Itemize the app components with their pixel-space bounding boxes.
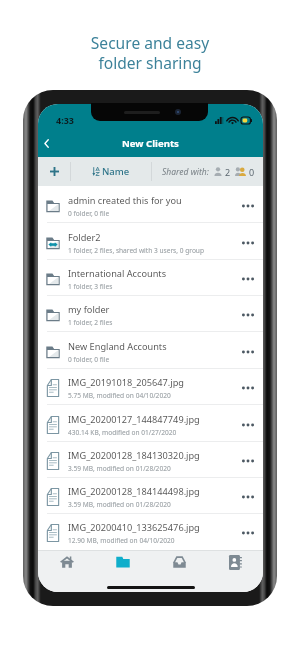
button[interactable]: IMG_20200128_184144498.jpg [38, 478, 263, 514]
button[interactable]: More options [233, 514, 263, 550]
staticText: 3.59 MB, modified on 01/28/2020 [68, 464, 171, 473]
button[interactable]: IMG_20200410_133625476.jpg [38, 514, 263, 550]
staticText: New Clients [122, 137, 179, 150]
staticText: 1 folder, 3 files [68, 282, 113, 291]
staticText: 1 folder, 2 files, shared with 3 users, … [68, 246, 205, 255]
button[interactable]: International Accounts [38, 260, 263, 296]
button[interactable]: admin created this for you [38, 187, 263, 223]
staticText: IMG_20200127_144847749.jpg [68, 413, 200, 426]
button[interactable]: Shared with: [162, 157, 255, 186]
button[interactable]: Add [38, 157, 70, 186]
button[interactable]: More options [233, 442, 263, 478]
staticText: IMG_20191018_205647.jpg [68, 376, 185, 389]
button[interactable]: More options [233, 223, 263, 260]
button[interactable]: Name [71, 157, 151, 186]
staticText: 430.14 KB, modified on 01/27/2020 [68, 428, 177, 437]
staticText: 4:33 [56, 114, 74, 126]
button[interactable]: Inbox [151, 551, 207, 573]
staticText: 2 [225, 166, 231, 178]
staticText: my folder [68, 303, 110, 316]
button[interactable]: Folder2 [38, 223, 263, 260]
staticText: Folder2 [68, 231, 101, 244]
button[interactable]: Back [38, 128, 54, 157]
staticText: 0 [249, 166, 255, 178]
button[interactable]: Contacts [207, 551, 263, 573]
button[interactable]: IMG_20191018_205647.jpg [38, 369, 263, 405]
staticText: admin created this for you [68, 194, 182, 207]
button[interactable]: Files [95, 551, 151, 573]
staticText: International Accounts [68, 267, 167, 280]
staticText: 0 folder, 0 file [68, 209, 110, 218]
button[interactable]: More options [233, 405, 263, 442]
staticText: 5.75 MB, modified on 04/10/2020 [68, 391, 171, 400]
staticText: IMG_20200128_184130320.jpg [68, 449, 200, 462]
button[interactable]: More options [233, 187, 263, 223]
staticText: 1 folder, 2 files [68, 318, 113, 327]
staticText: Name [102, 165, 130, 178]
staticText: 0 folder, 0 file [68, 355, 110, 364]
button[interactable]: IMG_20200127_144847749.jpg [38, 405, 263, 442]
button[interactable]: More options [233, 369, 263, 405]
button[interactable]: New England Accounts [38, 332, 263, 369]
button[interactable]: More options [233, 296, 263, 332]
staticText: New England Accounts [68, 340, 167, 353]
staticText: 3.59 MB, modified on 01/28/2020 [68, 500, 171, 509]
staticText: Secure and easy folder sharing [0, 32, 300, 73]
button[interactable]: More options [233, 332, 263, 369]
button[interactable]: my folder [38, 296, 263, 332]
button[interactable]: Home [38, 551, 95, 573]
staticText: IMG_20200128_184144498.jpg [68, 485, 200, 498]
staticText: 12.90 MB, modified on 04/10/2020 [68, 536, 175, 545]
button[interactable]: More options [233, 478, 263, 514]
staticText: Shared with: [162, 166, 209, 178]
button[interactable]: More options [233, 260, 263, 296]
staticText: IMG_20200410_133625476.jpg [68, 521, 200, 534]
button[interactable]: IMG_20200128_184130320.jpg [38, 442, 263, 478]
